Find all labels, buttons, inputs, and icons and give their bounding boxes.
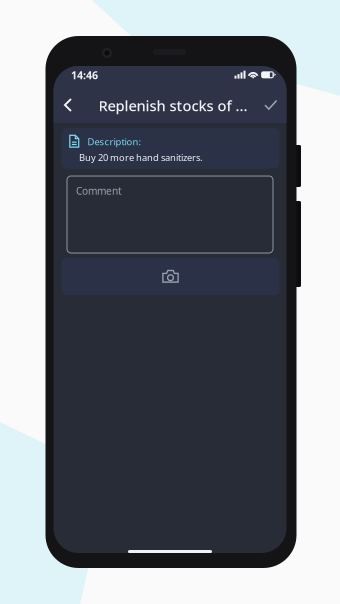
staticText: Replenish stocks of ... xyxy=(98,95,247,115)
staticText: Buy 20 more hand sanitizers. xyxy=(79,151,203,164)
button[interactable]: Back xyxy=(55,92,81,118)
staticText: Comment xyxy=(76,184,122,198)
button[interactable]: Attach photo xyxy=(61,258,279,295)
staticText: Description: xyxy=(87,135,141,148)
button[interactable]: Done xyxy=(258,92,284,118)
staticText: 14:46 xyxy=(71,68,98,82)
